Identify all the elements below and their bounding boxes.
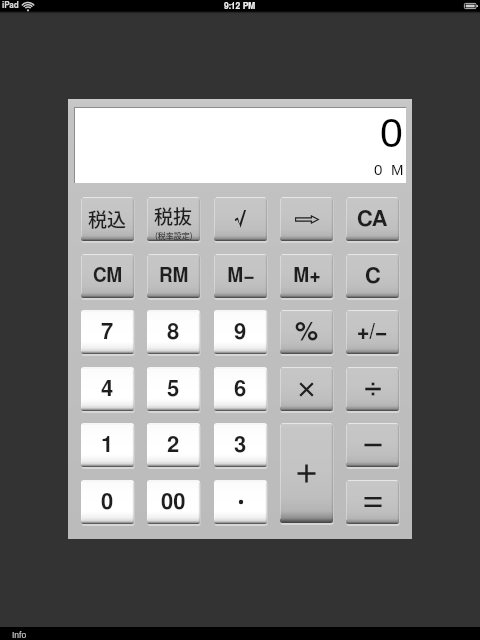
- staticText: 0: [101, 491, 114, 513]
- staticText: %: [295, 319, 319, 345]
- staticText: CM: [93, 267, 123, 286]
- button[interactable]: CM: [81, 254, 134, 298]
- button[interactable]: 00: [147, 480, 200, 524]
- staticText: C: [365, 265, 381, 287]
- button[interactable]: Multiply: [280, 367, 333, 411]
- staticText: 9: [234, 321, 247, 343]
- staticText: (税率設定): [155, 230, 193, 242]
- staticText: 0: [380, 110, 403, 156]
- button[interactable]: Minus: [346, 423, 399, 467]
- staticText: iPad: [2, 2, 19, 10]
- staticText: RM: [159, 267, 189, 286]
- button[interactable]: C: [346, 254, 399, 298]
- staticText: 1: [101, 434, 114, 456]
- staticText: 2: [167, 434, 180, 456]
- staticText: 9:12 PM: [224, 2, 256, 11]
- button[interactable]: M−: [214, 254, 267, 298]
- button[interactable]: 税抜: [147, 197, 200, 241]
- staticText: 8: [167, 321, 180, 343]
- staticText: 税込: [88, 205, 127, 233]
- button[interactable]: M+: [280, 254, 333, 298]
- staticText: CA: [357, 208, 388, 230]
- button[interactable]: %: [280, 310, 333, 354]
- staticText: 0: [374, 161, 383, 178]
- staticText: 6: [234, 378, 247, 400]
- staticText: M: [391, 161, 404, 178]
- button[interactable]: Divide: [346, 367, 399, 411]
- button[interactable]: Convert: [280, 197, 333, 241]
- button[interactable]: Decimal point: [214, 480, 267, 524]
- staticText: 3: [234, 434, 247, 456]
- button[interactable]: 6: [214, 367, 267, 411]
- button[interactable]: 5: [147, 367, 200, 411]
- button[interactable]: +/−: [346, 310, 399, 354]
- staticText: M+: [293, 267, 321, 286]
- button[interactable]: 2: [147, 423, 200, 467]
- button[interactable]: 7: [81, 310, 134, 354]
- button[interactable]: 9: [214, 310, 267, 354]
- staticText: Info: [12, 630, 27, 639]
- staticText: 7: [101, 321, 114, 343]
- staticText: +/−: [357, 322, 388, 343]
- button[interactable]: RM: [147, 254, 200, 298]
- button[interactable]: 税込: [81, 197, 134, 241]
- staticText: 00: [161, 491, 186, 513]
- button[interactable]: 3: [214, 423, 267, 467]
- button[interactable]: 0: [81, 480, 134, 524]
- button[interactable]: Square root: [214, 197, 267, 241]
- staticText: 4: [101, 378, 114, 400]
- button[interactable]: CA: [346, 197, 399, 241]
- button[interactable]: 8: [147, 310, 200, 354]
- staticText: M−: [227, 267, 255, 286]
- staticText: 5: [167, 378, 180, 400]
- button[interactable]: 1: [81, 423, 134, 467]
- button[interactable]: Equals: [346, 480, 399, 524]
- staticText: 税抜: [154, 202, 193, 230]
- button[interactable]: 4: [81, 367, 134, 411]
- button[interactable]: Plus: [280, 423, 333, 523]
